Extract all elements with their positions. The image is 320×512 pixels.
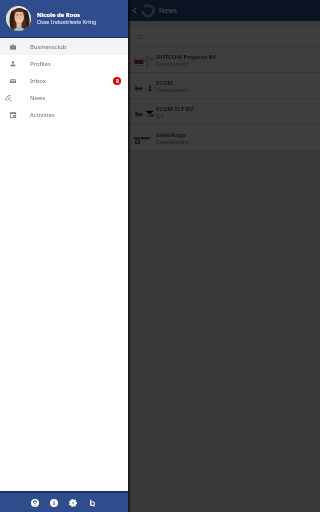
staticText: Inbox bbox=[30, 77, 46, 85]
staticText: SalesRapp bbox=[156, 131, 186, 139]
staticText: Businessclub bbox=[30, 43, 67, 51]
staticText: ECOM bbox=[156, 79, 174, 87]
staticText: ECOM ICT BV bbox=[156, 105, 194, 113]
staticText: Osse Industrieele Kring bbox=[37, 18, 97, 25]
staticText: Development bbox=[156, 139, 189, 146]
button[interactable]: News bbox=[0, 89, 128, 106]
button[interactable]: ECOM bbox=[128, 73, 320, 99]
staticText: DOTCOM Projects BV bbox=[156, 53, 217, 61]
staticText: ICT bbox=[156, 113, 164, 120]
staticText: News bbox=[159, 6, 177, 16]
button[interactable]: Settings bbox=[69, 495, 77, 511]
button[interactable]: Activities bbox=[0, 106, 128, 123]
staticText: Development bbox=[156, 87, 189, 94]
staticText: Activities bbox=[30, 111, 55, 119]
staticText: Development bbox=[156, 61, 189, 68]
button[interactable]: SalesRapp bbox=[128, 125, 320, 151]
button[interactable]: Brand bbox=[88, 495, 96, 511]
staticText: EC bbox=[137, 33, 144, 40]
staticText: Nicole de Roos bbox=[37, 11, 81, 19]
button[interactable]: Profiles bbox=[0, 55, 128, 72]
button[interactable]: DOTCOM Projects BV bbox=[128, 47, 320, 73]
button[interactable]: Back bbox=[130, 6, 139, 15]
button[interactable]: Inbox bbox=[0, 72, 128, 89]
button[interactable]: Information bbox=[50, 495, 58, 511]
staticText: News bbox=[30, 94, 46, 102]
button[interactable]: ECOM ICT BV bbox=[128, 99, 320, 125]
button[interactable]: Help bbox=[31, 495, 39, 511]
staticText: 8 bbox=[116, 78, 119, 85]
button[interactable]: Businessclub bbox=[0, 38, 128, 55]
staticText: Profiles bbox=[30, 60, 51, 68]
